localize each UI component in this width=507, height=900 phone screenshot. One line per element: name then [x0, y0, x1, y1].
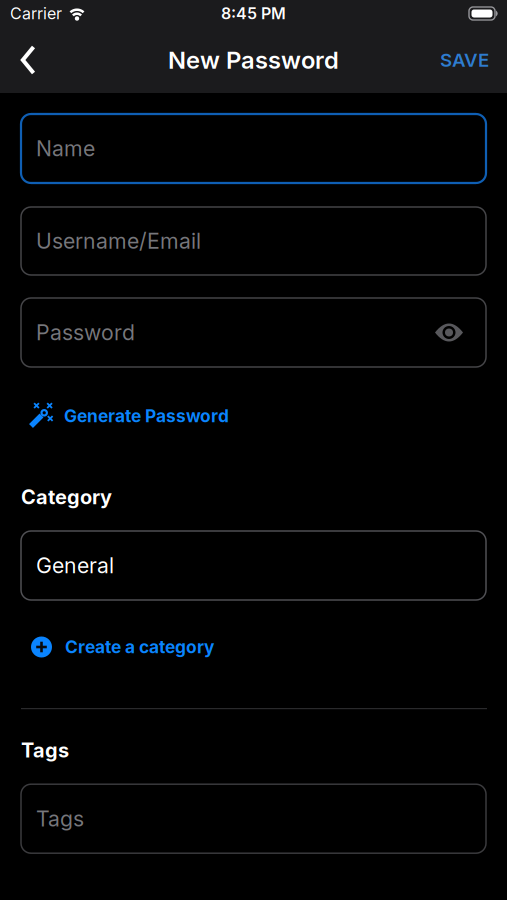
button[interactable]: Name: [21, 114, 486, 183]
staticText: New Password: [168, 46, 339, 74]
staticText: Category: [21, 485, 112, 509]
staticText: Password: [36, 320, 135, 345]
staticText: Tags: [21, 738, 69, 762]
button[interactable]: Generate Password: [0, 403, 507, 429]
button[interactable]: Back: [0, 33, 51, 87]
staticText: General: [36, 553, 114, 578]
button[interactable]: Tags: [21, 784, 486, 853]
button[interactable]: General: [21, 531, 486, 600]
button[interactable]: SAVE: [440, 33, 507, 87]
staticText: Generate Password: [64, 406, 229, 426]
staticText: Create a category: [65, 637, 214, 657]
staticText: Tags: [36, 806, 84, 831]
staticText: 8:45 PM: [221, 4, 286, 23]
staticText: SAVE: [440, 49, 489, 71]
staticText: Username/Email: [36, 228, 201, 254]
button[interactable]: Username/Email: [21, 207, 486, 275]
staticText: Name: [36, 136, 95, 161]
button[interactable]: Create a category: [0, 633, 507, 661]
button[interactable]: Show password: [435, 323, 486, 342]
staticText: Carrier: [10, 4, 62, 23]
button[interactable]: Password: [21, 298, 486, 367]
